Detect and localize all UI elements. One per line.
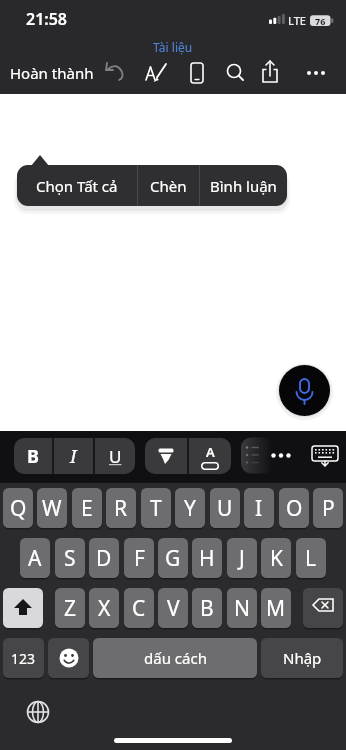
staticText: F <box>134 544 145 573</box>
button[interactable]: T <box>141 488 171 530</box>
button[interactable] <box>303 588 343 630</box>
staticText: Q <box>10 494 27 523</box>
button[interactable]: C <box>124 588 154 630</box>
button[interactable]: Chèn <box>138 165 199 206</box>
button[interactable]: M <box>261 588 291 630</box>
button[interactable]: U <box>95 438 135 474</box>
button[interactable]: L <box>296 538 326 580</box>
staticText: Nhập <box>283 648 322 668</box>
button[interactable]: F <box>124 538 154 580</box>
staticText: K <box>270 544 283 573</box>
button[interactable] <box>270 56 304 90</box>
button[interactable]: Chọn Tất cả <box>17 165 137 206</box>
staticText: Bình luận <box>210 176 277 196</box>
button[interactable]: N <box>227 588 257 630</box>
button[interactable]: U <box>210 488 240 530</box>
button[interactable]: B <box>14 438 52 474</box>
button[interactable] <box>308 437 342 474</box>
staticText: D <box>96 544 112 573</box>
staticText: R <box>114 494 128 523</box>
button[interactable] <box>202 56 236 90</box>
staticText: J <box>239 544 245 573</box>
staticText: I <box>255 494 263 523</box>
staticText: Tài liệu <box>153 39 193 55</box>
staticText: U <box>217 494 233 523</box>
staticText: Chọn Tất cả <box>36 176 118 196</box>
staticText: W <box>42 494 62 523</box>
button[interactable] <box>168 56 202 90</box>
staticText: G <box>165 544 181 573</box>
staticText: B <box>27 444 39 469</box>
staticText: S <box>64 544 76 573</box>
button[interactable]: R <box>106 488 136 530</box>
button[interactable]: P <box>313 488 343 530</box>
button[interactable]: 123 <box>3 638 44 680</box>
button[interactable]: I <box>54 438 93 474</box>
button[interactable]: K <box>261 538 291 580</box>
button[interactable]: X <box>89 588 119 630</box>
staticText: T <box>150 494 162 523</box>
staticText: Y <box>184 494 196 523</box>
button[interactable]: Bình luận <box>200 165 287 206</box>
button[interactable]: A <box>20 538 50 580</box>
button[interactable] <box>266 437 296 474</box>
staticText: N <box>234 594 250 623</box>
staticText: Hoàn thành <box>10 63 94 83</box>
button[interactable]: Z <box>55 588 85 630</box>
staticText: B <box>200 594 214 623</box>
button[interactable]: dấu cách <box>93 638 257 680</box>
button[interactable]: H <box>192 538 222 580</box>
button[interactable]: A <box>189 438 231 474</box>
staticText: O <box>286 494 303 523</box>
button[interactable] <box>134 56 168 90</box>
button[interactable]: G <box>158 538 188 580</box>
staticText: V <box>167 594 180 623</box>
button[interactable] <box>145 438 187 474</box>
button[interactable] <box>48 638 89 680</box>
staticText: LTE <box>288 13 306 28</box>
button[interactable]: V <box>158 588 188 630</box>
button[interactable] <box>24 698 52 726</box>
staticText: L <box>305 544 317 573</box>
button[interactable]: B <box>192 588 222 630</box>
staticText: P <box>322 494 335 523</box>
button[interactable]: Y <box>175 488 205 530</box>
button[interactable]: J <box>227 538 257 580</box>
button[interactable]: Hoàn thành <box>10 63 94 83</box>
button[interactable] <box>100 56 134 90</box>
staticText: 123 <box>11 649 36 668</box>
staticText: A <box>206 443 215 461</box>
staticText: dấu cách <box>144 648 207 668</box>
button[interactable]: Q <box>3 488 33 530</box>
button[interactable]: S <box>55 538 85 580</box>
staticText: X <box>98 594 111 623</box>
staticText: 76 <box>315 15 326 26</box>
button[interactable]: O <box>279 488 309 530</box>
button[interactable] <box>3 588 43 630</box>
staticText: I <box>70 444 77 469</box>
staticText: E <box>81 494 93 523</box>
button[interactable]: Nhập <box>261 638 343 680</box>
staticText: M <box>266 594 286 623</box>
button[interactable] <box>236 56 270 90</box>
staticText: A <box>28 544 42 573</box>
button[interactable]: I <box>244 488 274 530</box>
staticText: Z <box>64 594 77 623</box>
staticText: H <box>199 544 215 573</box>
staticText: Chèn <box>150 176 187 196</box>
staticText: 21:58 <box>26 8 68 30</box>
button[interactable]: E <box>72 488 102 530</box>
button[interactable] <box>279 365 330 416</box>
button[interactable]: W <box>37 488 67 530</box>
button[interactable]: D <box>89 538 119 580</box>
staticText: U <box>109 445 122 468</box>
staticText: C <box>132 594 146 623</box>
